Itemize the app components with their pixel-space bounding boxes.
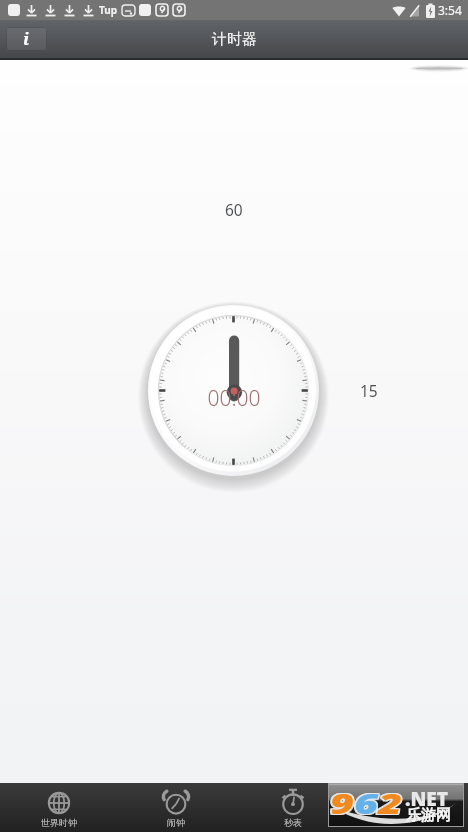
staticText: 6 (356, 784, 380, 823)
staticText: 2 (380, 784, 404, 823)
staticText: 2 (380, 782, 404, 821)
staticText: 00:00 (207, 384, 261, 413)
staticText: 2 (378, 784, 402, 823)
staticText: 6 (354, 783, 378, 822)
staticText: 世界时钟 (41, 817, 77, 828)
staticText: 2 (380, 783, 404, 822)
staticText: 乐游网 (406, 806, 451, 825)
staticText: 6 (353, 783, 377, 822)
staticText: 2 (377, 783, 401, 822)
staticText: 6 (356, 783, 380, 822)
button[interactable]: Info (6, 27, 47, 51)
staticText: 9 (330, 784, 354, 823)
staticText: 9 (331, 784, 355, 823)
staticText: i (23, 27, 30, 50)
staticText: 9 (331, 783, 355, 822)
staticText: 60 (225, 199, 243, 220)
staticText: 9 (329, 784, 353, 823)
staticText: 6 (354, 782, 378, 821)
button[interactable]: 闹钟 (117, 783, 234, 832)
staticText: 2 (377, 782, 401, 821)
staticText: 闹钟 (167, 817, 185, 828)
staticText: 6 (356, 782, 380, 821)
staticText: 9 (330, 783, 354, 822)
staticText: .NET (405, 786, 448, 812)
staticText: 15 (360, 380, 378, 401)
staticText: Tup (99, 3, 118, 17)
button[interactable]: 计时器 (351, 783, 468, 832)
staticText: 2 (378, 783, 402, 822)
staticText: 2 (378, 782, 402, 821)
staticText: 9 (330, 782, 354, 821)
staticText: 6 (353, 784, 377, 823)
staticText: 9 (329, 783, 353, 822)
staticText: 9 (329, 782, 353, 821)
button[interactable]: 秒表 (234, 783, 351, 832)
staticText: 秒表 (284, 817, 302, 828)
staticText: 9 (331, 782, 355, 821)
staticText: 2 (377, 784, 401, 823)
staticText: 6 (353, 782, 377, 821)
staticText: 3:54 (438, 2, 462, 18)
staticText: 计时器 (396, 817, 423, 828)
staticText: 6 (354, 784, 378, 823)
button[interactable]: 世界时钟 (0, 783, 117, 832)
staticText: 计时器 (212, 30, 257, 49)
